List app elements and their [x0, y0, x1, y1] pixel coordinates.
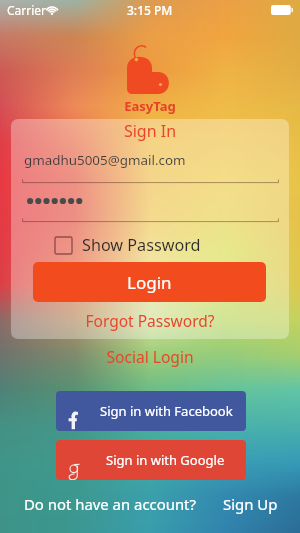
staticText: Sign in with Google	[106, 451, 225, 469]
staticText: Show Password	[82, 234, 201, 256]
button[interactable]: Sign in with Facebook	[56, 391, 246, 431]
staticText: Login	[127, 271, 172, 294]
button[interactable]: Show Password	[55, 234, 201, 256]
staticText: Sign In	[11, 120, 289, 142]
staticText: Carrier	[7, 2, 47, 18]
button[interactable]: Forgot Password?	[11, 310, 289, 331]
staticText: 3:15 PM	[127, 2, 173, 18]
staticText: Do not have an account?	[24, 494, 196, 514]
staticText: gmadhu5005@gmail.com	[24, 151, 186, 169]
staticText: EasyTag	[0, 97, 300, 115]
button[interactable]: Sign Up	[223, 494, 278, 514]
button[interactable]: Sign in with Google	[56, 440, 246, 480]
staticText: Sign in with Facebook	[100, 402, 233, 420]
button[interactable]: Login	[33, 262, 266, 302]
staticText: Social Login	[0, 346, 300, 367]
